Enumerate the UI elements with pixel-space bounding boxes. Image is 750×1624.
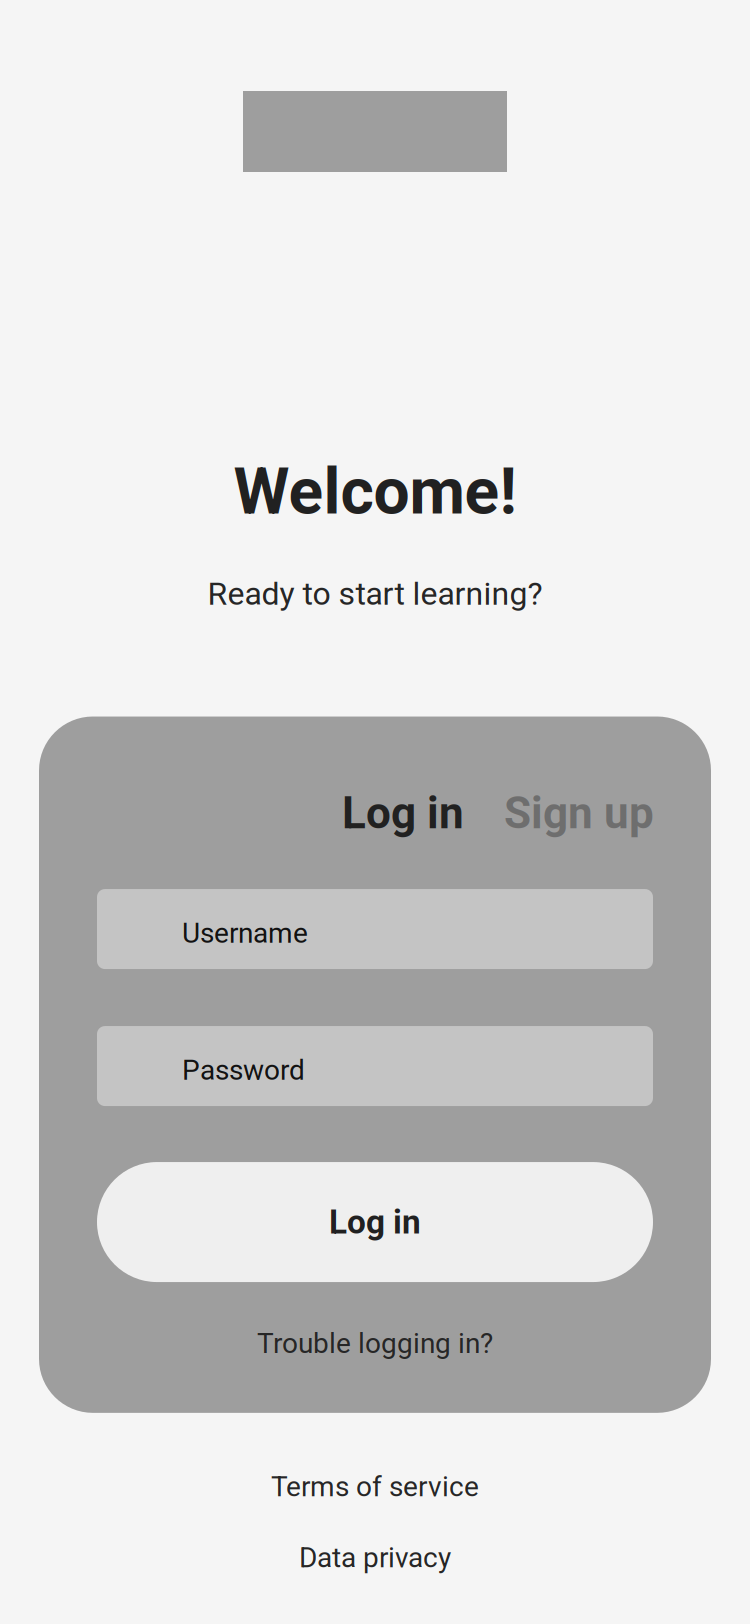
staticText: Welcome! xyxy=(233,454,516,529)
button[interactable]: Data privacy xyxy=(281,1533,469,1582)
staticText: Data privacy xyxy=(299,1541,451,1574)
staticText: Ready to start learning? xyxy=(207,575,542,612)
button[interactable]: Trouble logging in? xyxy=(243,1319,507,1368)
staticText: Password xyxy=(182,1054,305,1086)
button[interactable]: Terms of service xyxy=(253,1462,497,1511)
button[interactable]: Sign up xyxy=(504,787,654,839)
staticText: Log in xyxy=(329,1202,421,1242)
button[interactable]: Log in xyxy=(97,1162,653,1282)
staticText: Sign up xyxy=(504,787,654,839)
button[interactable]: Log in xyxy=(342,787,464,839)
staticText: Trouble logging in? xyxy=(257,1327,493,1360)
staticText: Terms of service xyxy=(271,1470,479,1503)
staticText: Username xyxy=(182,917,308,949)
staticText: Log in xyxy=(342,787,464,839)
